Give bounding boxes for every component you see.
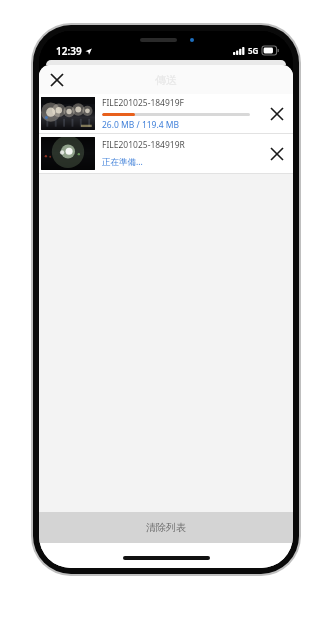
staticText: FILE201025-184919F [102, 97, 184, 109]
staticText: 傳送 [155, 73, 177, 87]
button[interactable]: Cancel transfer [261, 134, 293, 173]
button[interactable]: Cancel transfer [261, 94, 293, 133]
button[interactable]: FILE201025-184919R [39, 134, 293, 173]
button[interactable]: Close [44, 67, 70, 93]
staticText: 5G [248, 45, 259, 56]
button[interactable]: 清除列表 [39, 512, 293, 543]
staticText: FILE201025-184919R [102, 139, 185, 151]
staticText: 26.0 MB / 119.4 MB [102, 119, 180, 131]
staticText: 正在準備... [102, 156, 143, 168]
button[interactable]: FILE201025-184919F [39, 94, 293, 133]
staticText: 12:39 [56, 44, 82, 58]
staticText: 清除列表 [146, 521, 186, 534]
